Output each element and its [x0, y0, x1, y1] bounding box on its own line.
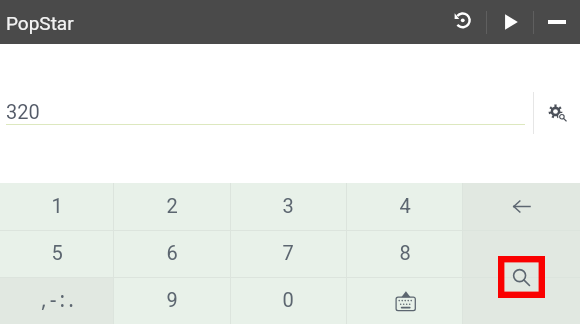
staticText: 7: [282, 241, 294, 264]
staticText: 5: [51, 241, 63, 264]
button[interactable]: [230, 277, 346, 324]
staticText: PopStar: [6, 12, 74, 34]
button[interactable]: [347, 183, 463, 230]
staticText: 3: [282, 194, 294, 217]
button[interactable]: Hide keyboard: [347, 277, 463, 324]
button[interactable]: Search settings: [538, 93, 578, 135]
button[interactable]: [0, 230, 114, 277]
button[interactable]: Search: [462, 230, 580, 324]
button[interactable]: [114, 183, 230, 230]
staticText: 320: [6, 100, 40, 123]
staticText: 9: [166, 288, 178, 311]
button[interactable]: Symbols: [0, 277, 114, 324]
staticText: 1: [51, 194, 63, 217]
button[interactable]: [347, 230, 463, 277]
staticText: 0: [282, 288, 294, 311]
button[interactable]: Restart: [439, 0, 486, 44]
button[interactable]: [230, 183, 346, 230]
button[interactable]: [114, 230, 230, 277]
button[interactable]: Minimize: [534, 0, 580, 44]
staticText: 4: [399, 194, 411, 217]
button[interactable]: Run: [487, 0, 533, 44]
button[interactable]: [230, 230, 346, 277]
button[interactable]: Backspace: [462, 183, 580, 230]
staticText: 6: [166, 241, 178, 264]
button[interactable]: [114, 277, 230, 324]
staticText: 8: [399, 241, 411, 264]
staticText: 2: [166, 194, 178, 217]
staticText: ,-:.: [41, 285, 78, 314]
button[interactable]: [0, 183, 114, 230]
